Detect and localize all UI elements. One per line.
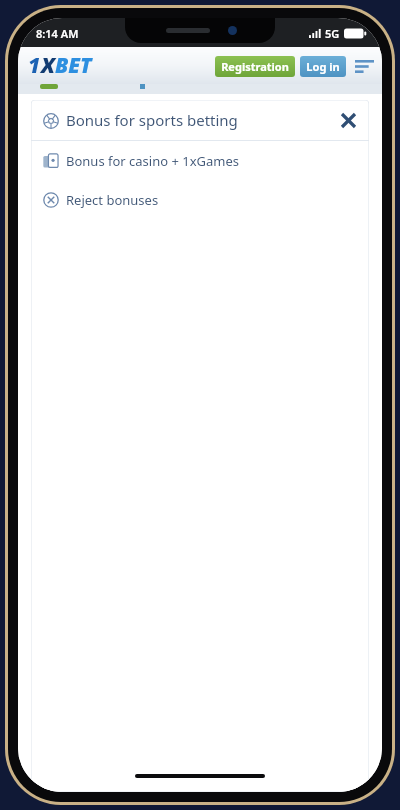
button[interactable]: Bonus for casino + 1xGames (31, 141, 369, 180)
staticText: Reject bonuses (66, 191, 159, 209)
button[interactable]: Close (337, 109, 359, 131)
staticText: 5G (325, 26, 340, 41)
button[interactable]: Log in (300, 56, 346, 77)
staticText: 1 (28, 51, 41, 80)
button[interactable]: Registration (215, 56, 295, 77)
staticText: Log in (306, 59, 340, 74)
button[interactable]: Bonus for sports betting (31, 100, 369, 140)
staticText: BET (55, 51, 92, 80)
button[interactable]: Reject bonuses (31, 180, 369, 219)
staticText: Bonus for casino + 1xGames (66, 152, 240, 170)
staticText: 8:14 AM (36, 26, 79, 41)
staticText: Bonus for sports betting (66, 110, 238, 130)
button[interactable]: Menu (353, 55, 375, 77)
staticText: Registration (221, 59, 289, 74)
staticText: X (41, 51, 55, 80)
